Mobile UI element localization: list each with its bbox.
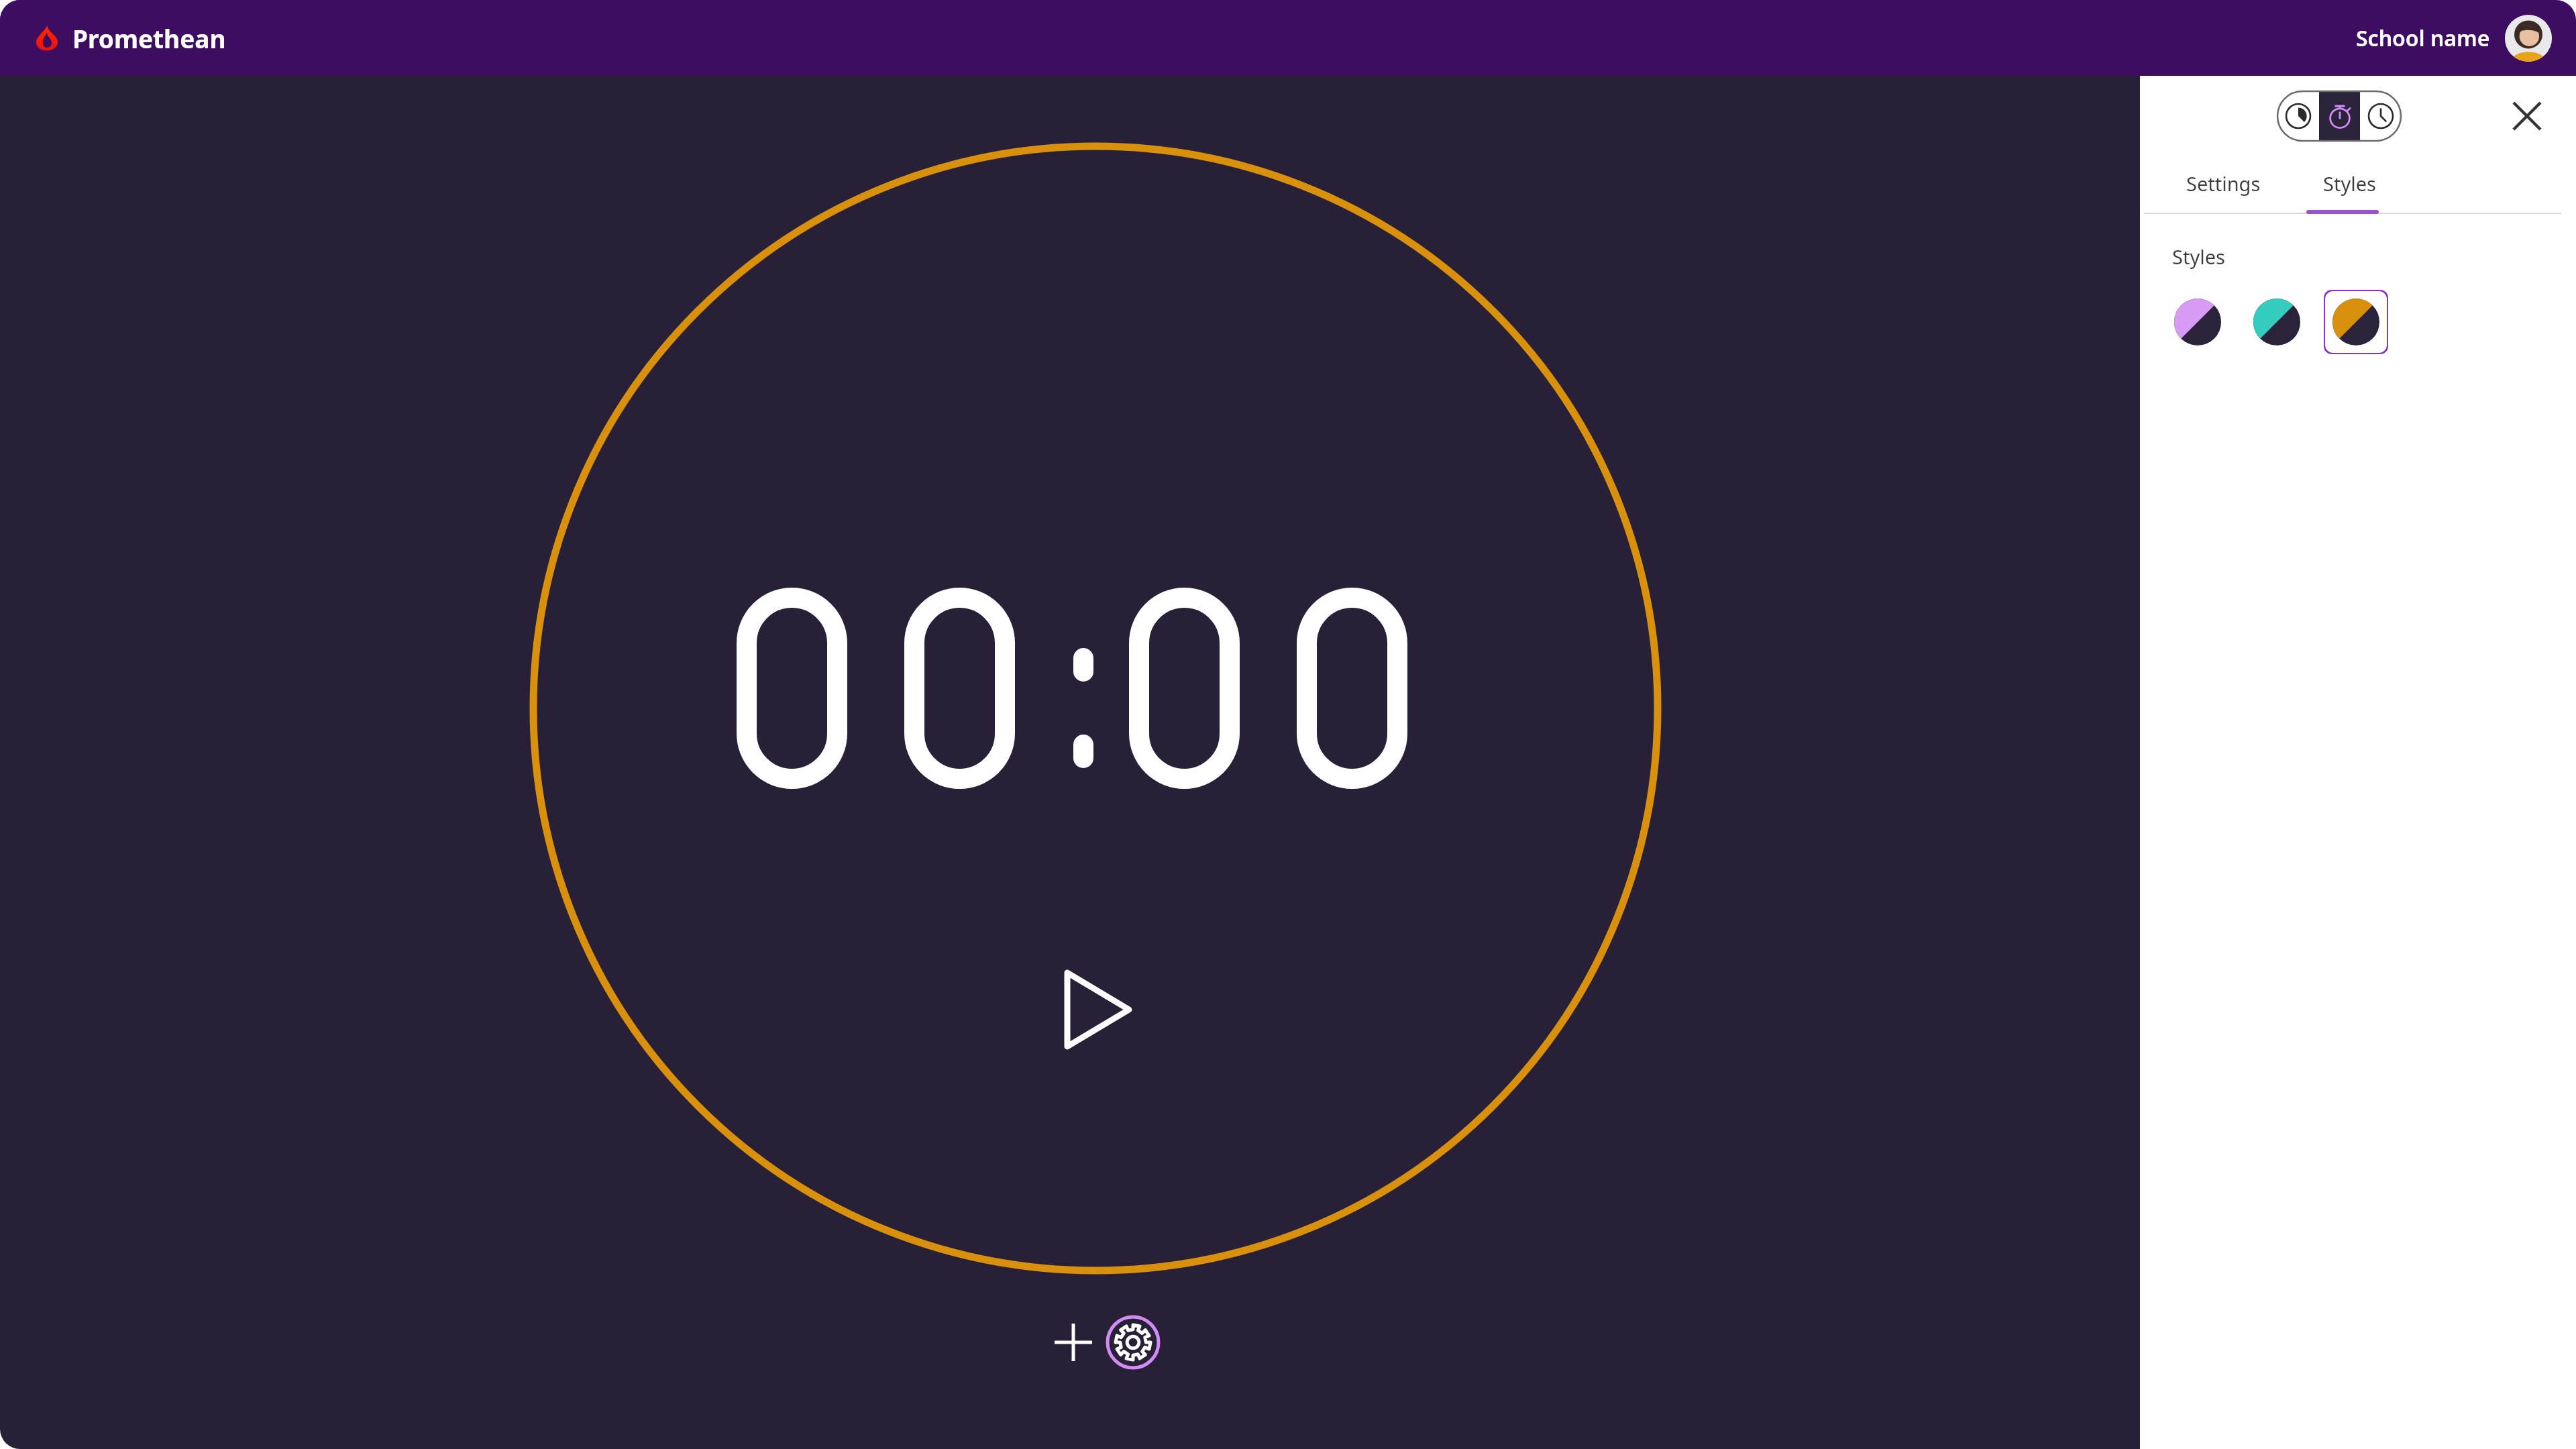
- button[interactable]: Stopwatch: [2319, 91, 2360, 141]
- button[interactable]: Close: [2506, 95, 2548, 137]
- button[interactable]: Clock: [2360, 91, 2401, 141]
- button[interactable]: Style colour: [2245, 290, 2309, 354]
- button[interactable]: Promethean: [32, 21, 226, 55]
- button[interactable]: Settings: [1106, 1315, 1161, 1370]
- staticText: Styles: [2172, 244, 2225, 270]
- button[interactable]: School name: [2356, 15, 2552, 62]
- staticText: Settings: [2186, 170, 2261, 197]
- staticText: Styles: [2323, 170, 2376, 197]
- button[interactable]: Add timer: [1046, 1316, 1100, 1369]
- button[interactable]: Countdown: [2277, 91, 2319, 141]
- button[interactable]: Styles: [2286, 156, 2412, 210]
- button[interactable]: Style colour: [2324, 290, 2388, 354]
- staticText: School name: [2356, 23, 2490, 53]
- staticText: Promethean: [72, 21, 226, 55]
- button[interactable]: Style colour: [2165, 290, 2230, 354]
- button[interactable]: Settings: [2160, 156, 2286, 210]
